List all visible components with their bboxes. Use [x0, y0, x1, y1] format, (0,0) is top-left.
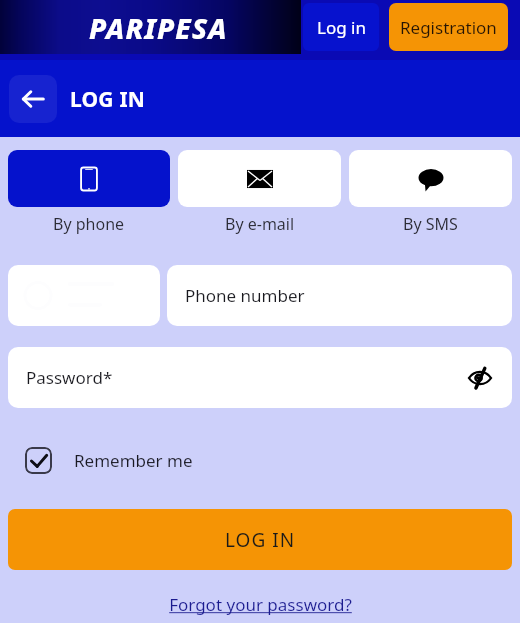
button[interactable]: Show password — [462, 360, 498, 396]
staticText: Password* — [26, 366, 113, 389]
button[interactable]: Back — [9, 75, 57, 123]
staticText: Remember me — [74, 449, 193, 472]
staticText: Registration — [400, 16, 497, 39]
staticText: LOG IN — [70, 85, 146, 114]
button[interactable]: Registration — [389, 3, 508, 51]
staticText: Forgot your password? — [169, 593, 352, 616]
button[interactable]: Phone number — [167, 265, 512, 326]
staticText: LOG IN — [225, 527, 296, 553]
button[interactable] — [178, 150, 341, 207]
button[interactable]: Log in — [303, 3, 379, 51]
button[interactable]: LOG IN — [8, 509, 512, 570]
button[interactable] — [349, 150, 512, 207]
staticText: By e-mail — [225, 213, 295, 235]
staticText: PARIPESA — [89, 9, 228, 47]
staticText: Phone number — [185, 284, 305, 307]
button[interactable] — [8, 150, 170, 207]
button[interactable]: Password* — [8, 347, 512, 408]
staticText: By phone — [53, 213, 125, 235]
staticText: By SMS — [403, 213, 458, 235]
staticText: Log in — [317, 16, 366, 39]
button[interactable]: Country code — [8, 265, 160, 326]
button[interactable]: Forgot your password? — [165, 589, 356, 620]
button[interactable]: Remember me — [25, 447, 193, 474]
